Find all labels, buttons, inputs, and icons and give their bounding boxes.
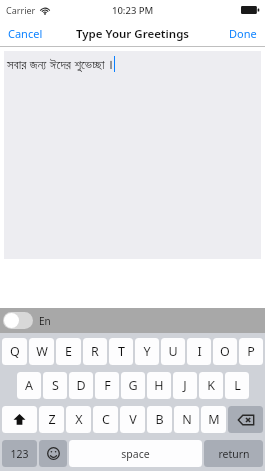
button[interactable]: F [95, 372, 119, 399]
button[interactable]: A [17, 372, 41, 399]
staticText: O [220, 343, 230, 360]
button[interactable]: Shift [2, 406, 37, 433]
staticText: W [36, 343, 48, 360]
button[interactable]: Cancel [0, 22, 51, 45]
staticText: Carrier [6, 4, 36, 16]
staticText: J [183, 377, 187, 394]
staticText: Z [48, 411, 56, 428]
staticText: Cancel [8, 26, 43, 41]
staticText: D [76, 377, 86, 394]
button[interactable]: 123 [2, 440, 37, 467]
button[interactable]: N [174, 406, 199, 433]
staticText: F [104, 377, 111, 394]
button[interactable]: P [239, 338, 263, 365]
button[interactable]: K [199, 372, 223, 399]
staticText: N [182, 411, 192, 428]
button[interactable]: C [93, 406, 118, 433]
button[interactable]: X [66, 406, 91, 433]
staticText: 10:23 PM [112, 4, 154, 17]
staticText: G [128, 377, 138, 394]
staticText: 123 [10, 447, 29, 461]
button[interactable]: Q [2, 338, 27, 365]
button[interactable]: W [29, 338, 54, 365]
button[interactable]: Y [135, 338, 159, 365]
button[interactable]: D [69, 372, 93, 399]
button[interactable]: I [187, 338, 211, 365]
button[interactable]: H [147, 372, 171, 399]
button[interactable]: J [173, 372, 197, 399]
staticText: Type Your Greetings [76, 26, 189, 42]
staticText: space [121, 447, 150, 461]
button[interactable]: Z [39, 406, 64, 433]
button[interactable]: U [161, 338, 185, 365]
staticText: A [25, 377, 33, 394]
staticText: R [91, 343, 99, 360]
staticText: X [75, 411, 83, 428]
button[interactable]: O [213, 338, 237, 365]
button[interactable]: space [69, 440, 202, 467]
button[interactable]: Emoji [39, 440, 67, 467]
button[interactable]: সবার জন্য ঈদের শুভেচ্ছা । [4, 51, 261, 259]
staticText: T [118, 343, 125, 360]
staticText: সবার জন্য ঈদের শুভেচ্ছা । [7, 55, 113, 73]
button[interactable]: G [121, 372, 145, 399]
staticText: Q [10, 343, 20, 360]
button[interactable]: M [201, 406, 226, 433]
staticText: Done [229, 26, 257, 41]
button[interactable]: Language toggle [3, 312, 33, 329]
staticText: return [218, 447, 250, 461]
staticText: U [168, 343, 178, 360]
button[interactable]: L [225, 372, 249, 399]
staticText: B [155, 411, 164, 428]
staticText: C [102, 411, 110, 428]
staticText: M [208, 411, 220, 428]
staticText: E [65, 343, 72, 360]
staticText: L [234, 377, 241, 394]
button[interactable]: R [83, 338, 107, 365]
button[interactable]: S [43, 372, 67, 399]
button[interactable]: Backspace [228, 406, 263, 433]
staticText: Y [143, 343, 151, 360]
staticText: H [154, 377, 164, 394]
button[interactable]: return [204, 440, 263, 467]
staticText: I [197, 343, 202, 360]
staticText: P [247, 343, 255, 360]
staticText: S [52, 377, 59, 394]
button[interactable]: Done [221, 22, 265, 45]
button[interactable]: E [56, 338, 81, 365]
button[interactable]: T [109, 338, 133, 365]
staticText: En [39, 314, 51, 328]
staticText: V [129, 411, 137, 428]
button[interactable]: V [120, 406, 145, 433]
staticText: K [207, 377, 215, 394]
button[interactable]: B [147, 406, 172, 433]
